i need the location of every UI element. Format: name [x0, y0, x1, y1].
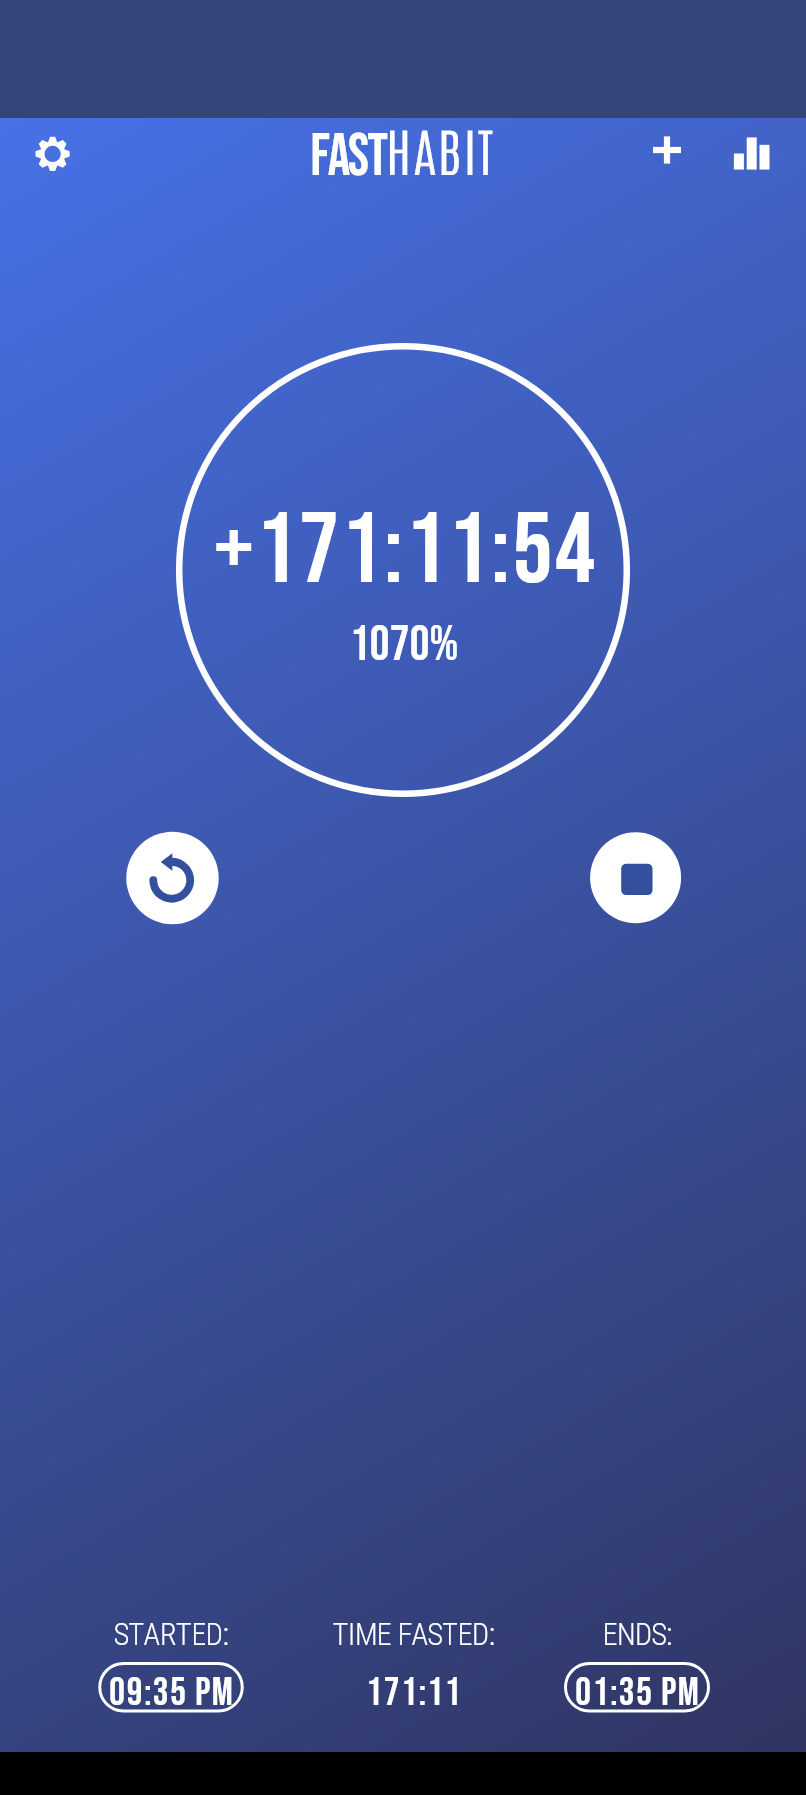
button[interactable]: Statistics: [716, 118, 788, 190]
button[interactable]: Stop fast: [590, 832, 683, 925]
button[interactable]: Settings: [17, 118, 89, 190]
button[interactable]: Restart fast: [126, 832, 219, 925]
button[interactable]: Add fast: [631, 118, 703, 190]
